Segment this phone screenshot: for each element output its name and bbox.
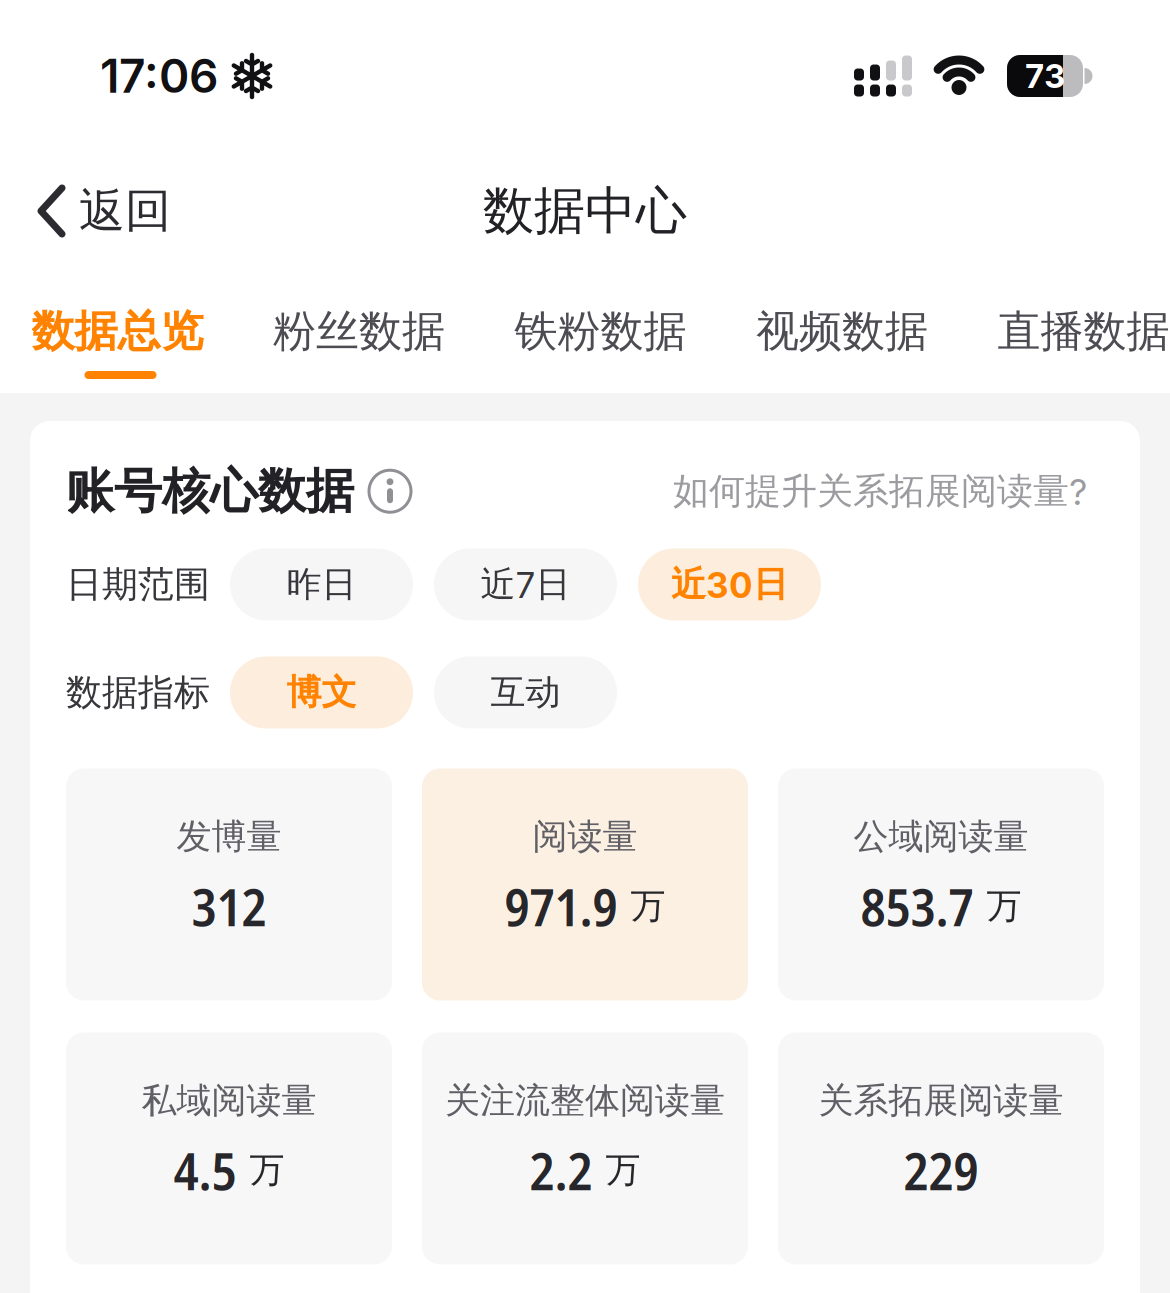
staticText: 昨日 xyxy=(286,562,356,606)
staticText: 971.9 xyxy=(504,871,617,941)
staticText: 万 xyxy=(630,884,665,928)
staticText: 发博量 xyxy=(176,814,281,859)
staticText: 关系拓展阅读量 xyxy=(818,1078,1063,1123)
staticText: 数据总览 xyxy=(31,304,203,359)
staticText: 4.5 xyxy=(173,1135,236,1205)
button[interactable]: 数据总览 xyxy=(31,304,203,359)
staticText: 互动 xyxy=(490,670,560,714)
staticText: 73 xyxy=(1025,56,1065,96)
button[interactable]: 互动 xyxy=(434,656,617,728)
button[interactable]: 博文 xyxy=(230,656,413,728)
staticText: 账号核心数据 xyxy=(66,461,354,521)
staticText: 公域阅读量 xyxy=(853,814,1028,859)
staticText: 229 xyxy=(903,1135,978,1205)
button[interactable]: 关注流整体阅读量 xyxy=(422,1032,748,1264)
button[interactable]: 近7日 xyxy=(434,548,617,620)
staticText: 粉丝数据 xyxy=(273,304,445,359)
staticText: 日期范围 xyxy=(66,562,210,607)
staticText: 2.2 xyxy=(529,1135,592,1205)
button[interactable]: 粉丝数据 xyxy=(273,304,445,359)
button[interactable]: 关于账号核心数据 xyxy=(367,468,413,514)
staticText: 返回 xyxy=(79,182,171,240)
staticText: 853.7 xyxy=(860,871,973,941)
staticText: 近30日 xyxy=(671,562,788,606)
button[interactable]: 近30日 xyxy=(638,548,821,620)
button[interactable]: 昨日 xyxy=(230,548,413,620)
button[interactable]: 关系拓展阅读量 xyxy=(778,1032,1104,1264)
staticText: 万 xyxy=(986,884,1021,928)
staticText: 如何提升关系拓展阅读量? xyxy=(673,469,1087,514)
staticText: 17:06 xyxy=(100,48,218,104)
button[interactable]: 公域阅读量 xyxy=(778,768,1104,1000)
staticText: 312 xyxy=(191,871,266,941)
button[interactable]: 发博量 xyxy=(66,768,392,1000)
button[interactable]: 私域阅读量 xyxy=(66,1032,392,1264)
staticText: 视频数据 xyxy=(756,304,928,359)
button[interactable]: 如何提升关系拓展阅读量? xyxy=(673,469,1104,514)
staticText: 直播数据 xyxy=(997,304,1169,359)
staticText: 博文 xyxy=(286,670,356,714)
button[interactable]: 返回 xyxy=(0,182,171,240)
staticText: 数据中心 xyxy=(483,179,687,243)
staticText: 万 xyxy=(605,1148,640,1192)
staticText: 近7日 xyxy=(480,562,570,606)
staticText: 阅读量 xyxy=(532,814,637,859)
staticText: 万 xyxy=(249,1148,284,1192)
button[interactable]: 阅读量 xyxy=(422,768,748,1000)
staticText: 私域阅读量 xyxy=(141,1078,316,1123)
staticText: 关注流整体阅读量 xyxy=(445,1078,725,1123)
button[interactable]: 直播数据 xyxy=(997,304,1169,359)
staticText: 数据指标 xyxy=(66,670,210,715)
staticText: 铁粉数据 xyxy=(514,304,686,359)
button[interactable]: 铁粉数据 xyxy=(514,304,686,359)
button[interactable]: 视频数据 xyxy=(756,304,928,359)
